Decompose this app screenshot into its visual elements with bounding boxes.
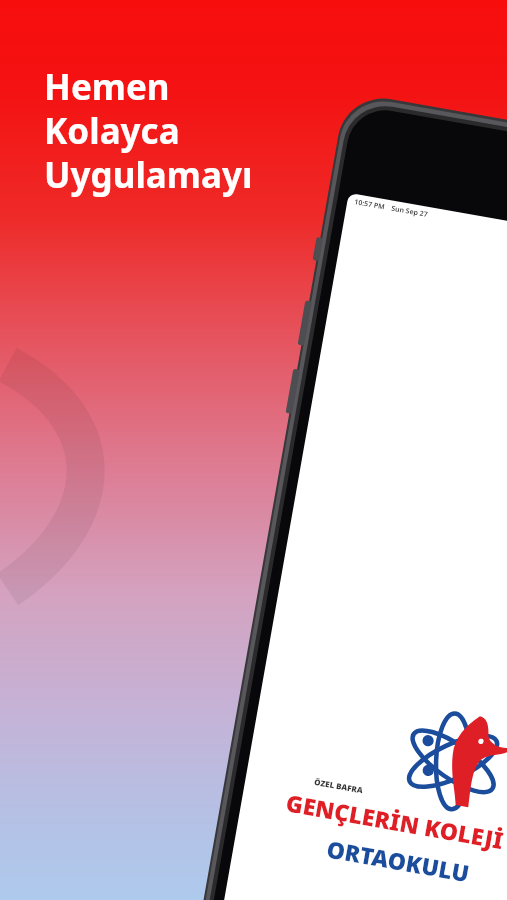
button[interactable]: App store preview screenshot: [0, 0, 507, 900]
